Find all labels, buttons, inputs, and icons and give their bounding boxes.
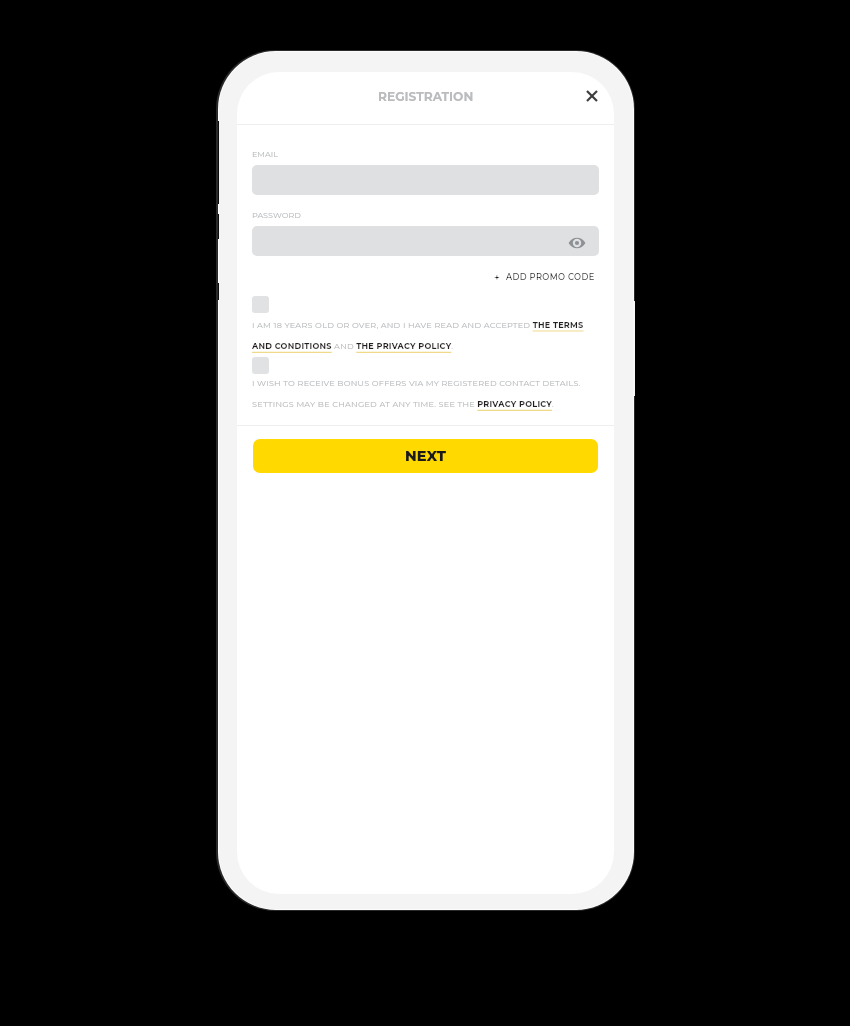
button[interactable]: I AM 18 YEARS OLD OR OVER, AND I HAVE RE… [252,320,599,351]
staticText: ADD PROMO CODE [506,272,595,282]
button[interactable]: I WISH TO RECEIVE BONUS OFFERS VIA MY RE… [252,378,599,409]
button[interactable]: + [498,269,599,285]
staticText: + [494,271,500,283]
button[interactable]: Show password [567,233,587,253]
button[interactable]: Checkbox [252,296,269,313]
button[interactable]: Close [578,82,606,110]
button[interactable]: NEXT [253,439,598,473]
button[interactable]: Checkbox [252,357,269,374]
button[interactable]: Password input [252,226,599,256]
staticText: PASSWORD [252,210,301,220]
staticText: NEXT [405,447,447,465]
staticText: REGISTRATION [378,89,474,104]
staticText: EMAIL [252,149,278,159]
